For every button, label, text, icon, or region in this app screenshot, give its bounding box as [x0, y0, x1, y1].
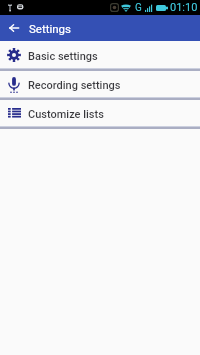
staticText: 01:10	[170, 1, 198, 14]
staticText: G	[135, 2, 142, 14]
button[interactable]: Navigate up	[2, 15, 26, 41]
button[interactable]: Basic settings	[0, 41, 200, 69]
staticText: Customize lists	[28, 108, 104, 121]
button[interactable]: Customize lists	[0, 99, 200, 127]
staticText: Recording settings	[28, 79, 121, 92]
staticText: Basic settings	[28, 50, 98, 63]
staticText: Settings	[29, 22, 71, 35]
button[interactable]: Recording settings	[0, 70, 200, 98]
